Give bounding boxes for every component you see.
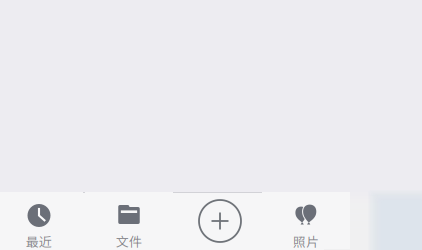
button[interactable]: 新建	[199, 200, 241, 242]
button[interactable]: 最近	[0, 192, 83, 249]
button[interactable]: 文件	[85, 192, 173, 249]
staticText: 文件	[116, 232, 142, 250]
staticText: 照片	[293, 232, 319, 250]
staticText: 最近	[26, 232, 52, 250]
button[interactable]: 照片	[262, 192, 350, 249]
